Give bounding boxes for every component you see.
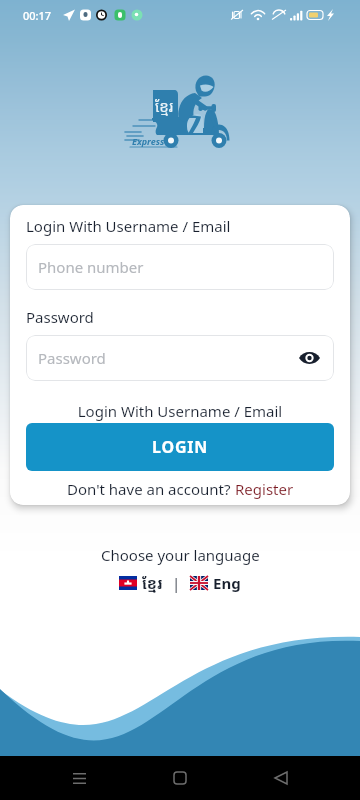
staticText: Login With Username / Email (26, 216, 231, 236)
staticText: Express (132, 135, 165, 147)
button[interactable]: Back (259, 756, 303, 800)
button[interactable]: LOGIN (26, 423, 334, 471)
button[interactable]: Eng (190, 573, 241, 593)
staticText: 00:17 (23, 8, 52, 23)
staticText: Don't have an account? (67, 479, 235, 499)
button[interactable]: Show password (296, 345, 322, 371)
staticText: Phone number (38, 257, 144, 277)
staticText: Choose your language (101, 545, 260, 565)
button[interactable]: Recent apps (57, 756, 101, 800)
button[interactable]: Phone number (26, 244, 334, 290)
staticText: ខ្មែរ (155, 96, 174, 116)
staticText: Eng (213, 573, 241, 593)
staticText: | (172, 573, 181, 593)
button[interactable]: Register (235, 479, 294, 499)
button[interactable]: Password (26, 335, 334, 381)
staticText: Password (26, 307, 94, 327)
button[interactable]: ខ្មែរ (119, 573, 163, 593)
staticText: Password (38, 348, 106, 368)
button[interactable]: Home (158, 756, 202, 800)
staticText: ខ្មែរ (142, 573, 163, 593)
staticText: Login With Username / Email (10, 401, 350, 421)
staticText: LOGIN (152, 436, 209, 458)
